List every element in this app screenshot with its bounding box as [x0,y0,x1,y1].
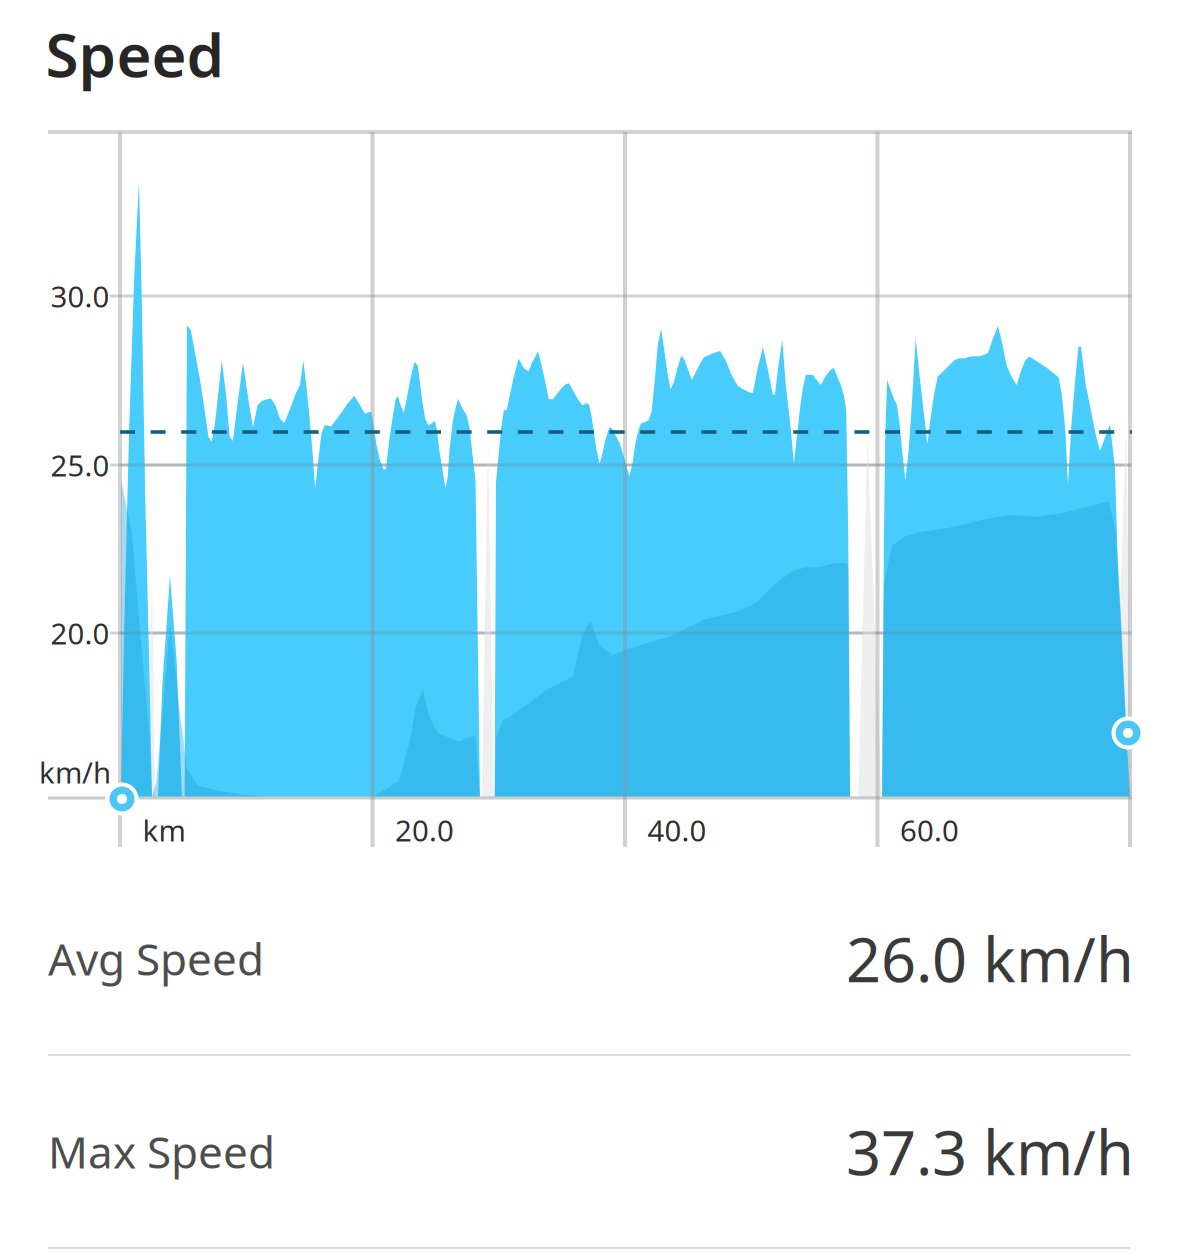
staticText: 60.0 [900,810,959,849]
staticText: 30.0 [50,276,109,315]
staticText: 26.0 km/h [846,918,1134,999]
staticText: 25.0 [50,445,109,484]
staticText: 40.0 [647,810,706,849]
staticText: 37.3 km/h [846,1111,1134,1192]
staticText: Avg Speed [48,929,264,988]
staticText: km/h [39,752,111,791]
button[interactable]: Max Speed [0,1056,1179,1249]
staticText: 20.0 [395,810,454,849]
staticText: Max Speed [48,1122,275,1181]
button[interactable]: Adjust range [1111,716,1144,749]
staticText: 20.0 [50,613,109,652]
button[interactable]: Avg Speed [0,863,1179,1056]
staticText: km [142,810,185,849]
staticText: Speed [45,14,224,94]
button[interactable]: Adjust range [105,782,138,815]
